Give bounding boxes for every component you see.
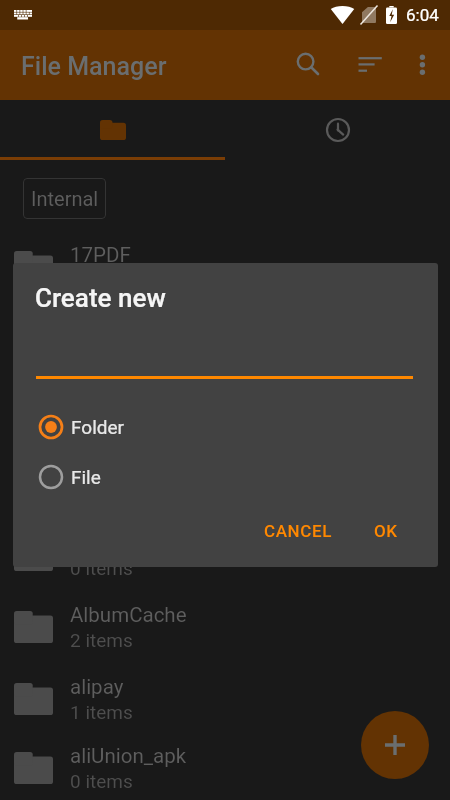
button[interactable]: OK — [372, 512, 400, 550]
button[interactable]: More options — [398, 40, 448, 90]
staticText: Create new — [35, 283, 166, 313]
button[interactable]: Create new — [361, 711, 429, 779]
button[interactable]: File — [13, 460, 438, 494]
staticText: 0 items — [70, 557, 133, 579]
button[interactable]: Recent tab — [225, 100, 450, 160]
button[interactable]: CANCEL — [262, 512, 335, 550]
staticText: 1 items — [70, 701, 133, 723]
button[interactable]: Folders tab — [0, 100, 225, 160]
staticText: 6:04 — [406, 5, 439, 25]
staticText: AlbumCache — [70, 603, 187, 627]
button[interactable]: backups — [0, 519, 450, 591]
staticText: aliUnion_apk — [70, 744, 187, 768]
staticText: Internal — [31, 187, 99, 210]
button[interactable]: aliUnion_apk — [0, 735, 450, 800]
staticText: OK — [374, 521, 398, 541]
staticText: CANCEL — [264, 521, 333, 541]
staticText: Folder — [71, 416, 124, 438]
button[interactable]: 360 — [0, 303, 450, 375]
button[interactable]: Alarms — [0, 375, 450, 447]
button[interactable]: alipay — [0, 663, 450, 735]
staticText: File — [71, 466, 101, 488]
button[interactable]: Android — [0, 447, 450, 519]
staticText: 0 items — [70, 269, 133, 291]
staticText: 17PDF — [70, 243, 131, 267]
button[interactable]: Internal — [23, 178, 106, 219]
staticText: Android — [70, 459, 142, 483]
staticText: alipay — [70, 675, 124, 699]
button[interactable]: AlbumCache — [0, 591, 450, 663]
staticText: 0 items — [70, 413, 133, 435]
button[interactable]: Folder — [13, 410, 438, 444]
button[interactable]: Sort — [345, 42, 395, 92]
staticText: 0 items — [70, 770, 133, 792]
button[interactable]: Search — [284, 40, 334, 90]
staticText: 2 items — [70, 629, 133, 651]
button[interactable]: 17PDF — [0, 231, 450, 303]
staticText: File Manager — [21, 52, 167, 81]
